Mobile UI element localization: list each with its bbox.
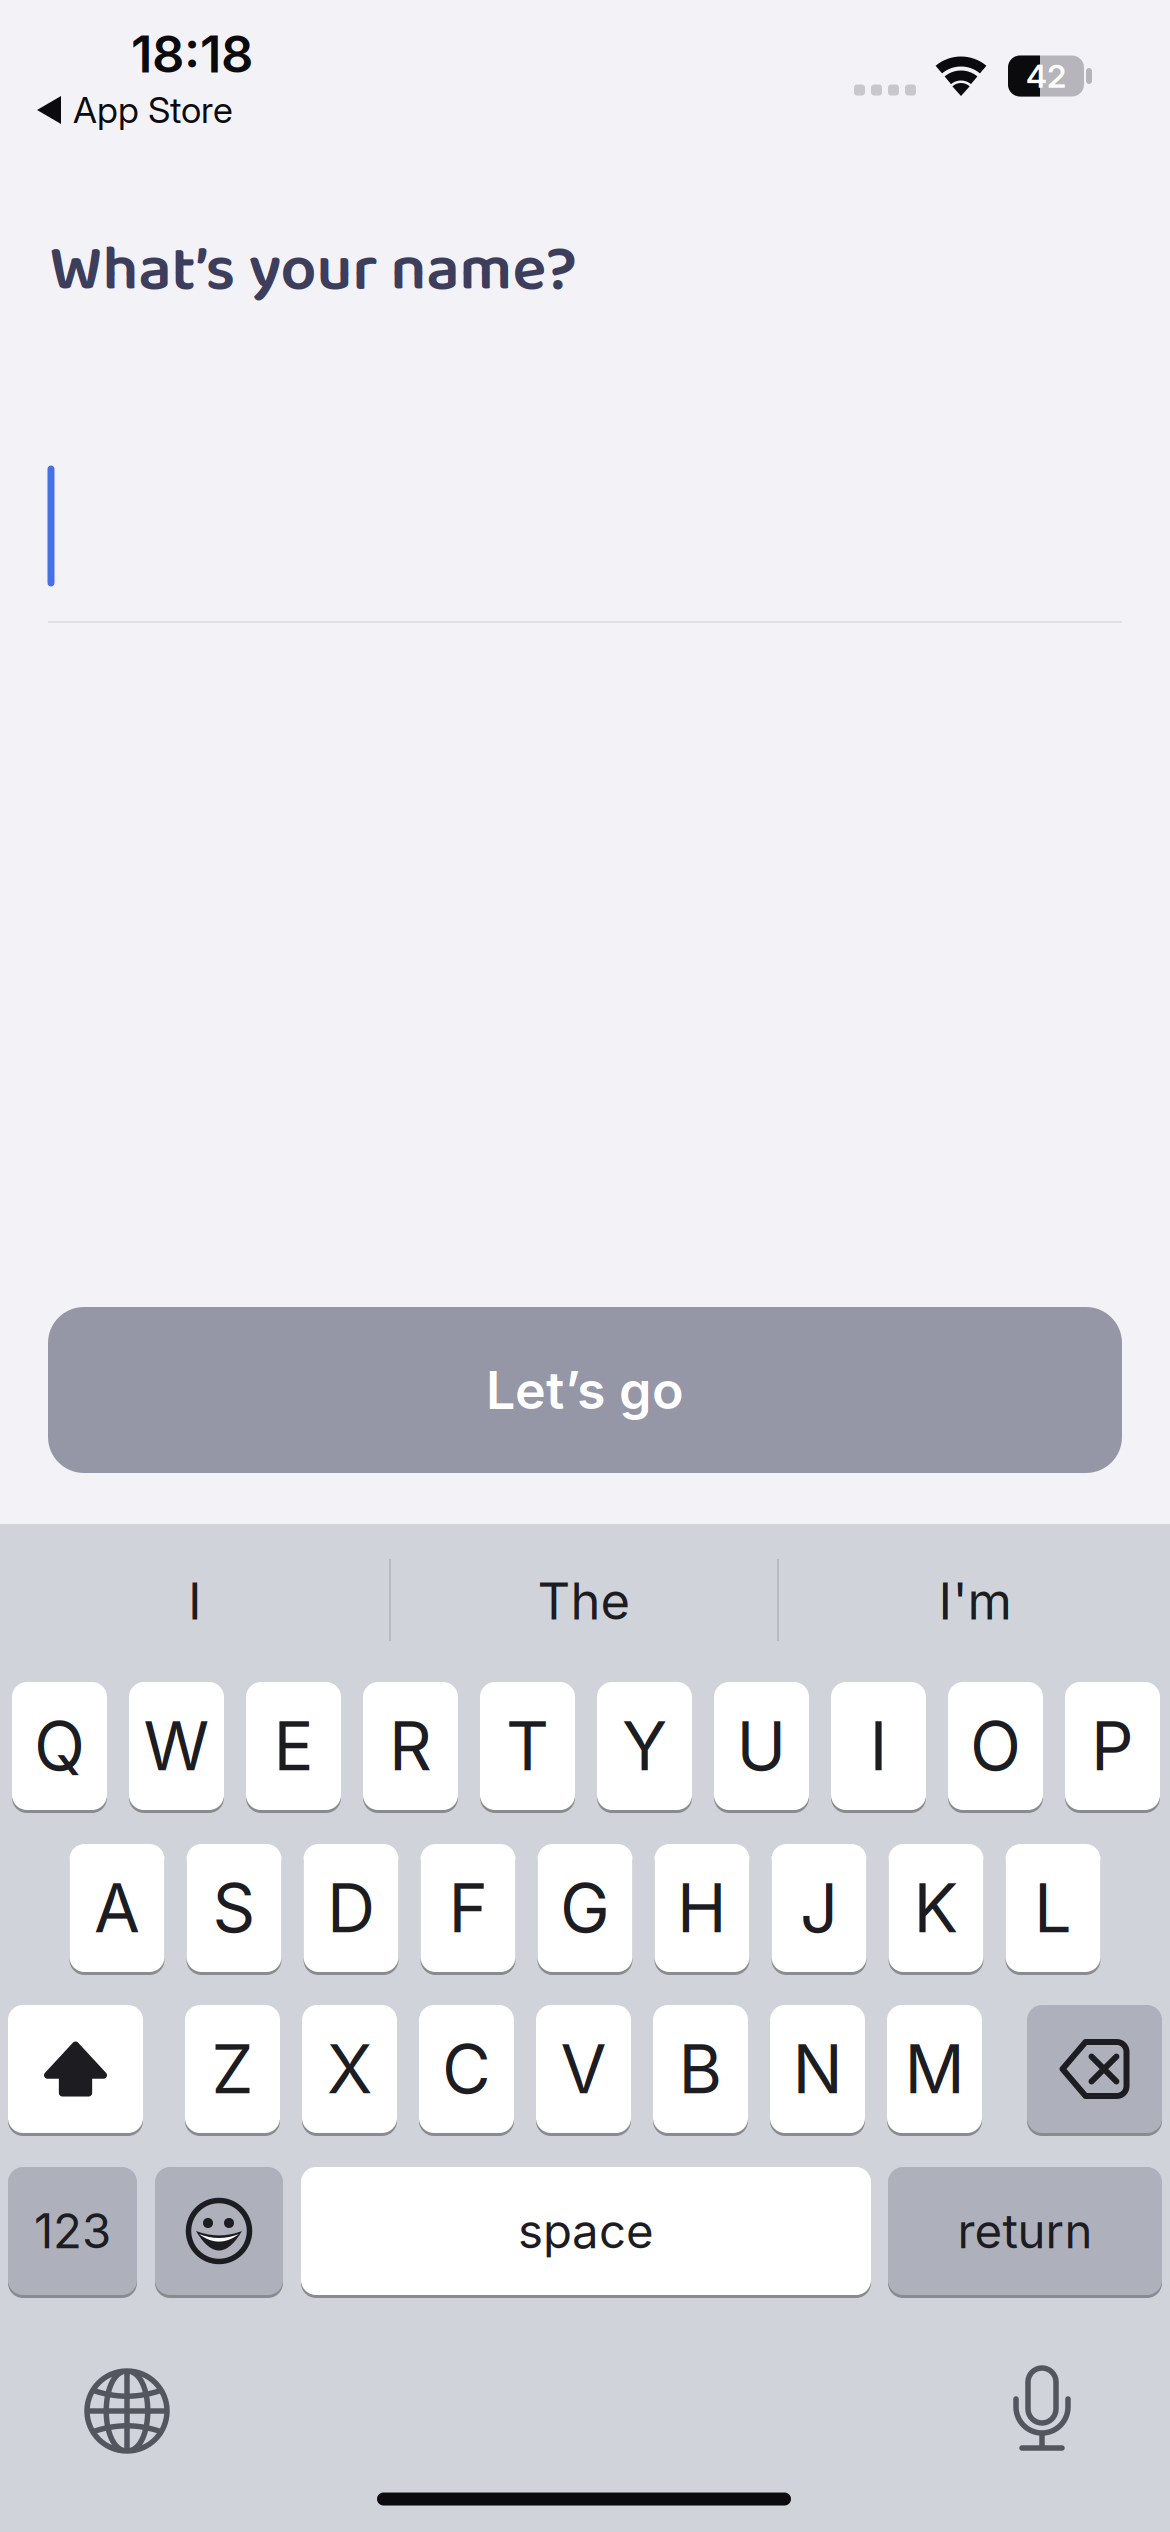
staticText: N: [792, 2029, 842, 2109]
button[interactable]: Q: [12, 1682, 107, 1810]
button[interactable]: H: [654, 1844, 749, 1972]
button[interactable]: The: [394, 1551, 774, 1651]
staticText: J: [800, 1868, 838, 1948]
staticText: space: [518, 2202, 654, 2260]
button[interactable]: S: [186, 1844, 281, 1972]
staticText: S: [212, 1868, 255, 1948]
button[interactable]: K: [888, 1844, 983, 1972]
staticText: C: [442, 2029, 491, 2109]
button[interactable]: Next keyboard: [87, 2371, 167, 2451]
staticText: Q: [34, 1706, 85, 1786]
button[interactable]: F: [420, 1844, 515, 1972]
staticText: R: [389, 1706, 432, 1786]
button[interactable]: A: [69, 1844, 164, 1972]
button[interactable]: E: [246, 1682, 341, 1810]
staticText: E: [273, 1706, 313, 1786]
staticText: The: [537, 1570, 630, 1632]
staticText: G: [560, 1868, 610, 1948]
staticText: Y: [622, 1706, 667, 1786]
button[interactable]: Delete: [1027, 2005, 1162, 2133]
staticText: 18:18: [131, 23, 253, 85]
button[interactable]: space: [301, 2167, 871, 2295]
staticText: Z: [211, 2029, 253, 2109]
staticText: return: [957, 2202, 1092, 2260]
button[interactable]: U: [714, 1682, 809, 1810]
staticText: W: [143, 1706, 209, 1786]
staticText: O: [970, 1706, 1021, 1786]
button[interactable]: Let’s go: [48, 1307, 1122, 1473]
button[interactable]: Dictation: [1011, 2361, 1073, 2453]
button[interactable]: N: [770, 2005, 865, 2133]
button[interactable]: R: [363, 1682, 458, 1810]
button[interactable]: X: [302, 2005, 397, 2133]
button[interactable]: C: [419, 2005, 514, 2133]
staticText: 42: [1026, 57, 1066, 95]
button[interactable]: 123: [8, 2167, 137, 2295]
button[interactable]: Shift: [8, 2005, 143, 2133]
staticText: App Store: [73, 88, 233, 132]
button[interactable]: D: [303, 1844, 398, 1972]
button[interactable]: I: [831, 1682, 926, 1810]
button[interactable]: B: [653, 2005, 748, 2133]
staticText: I: [869, 1706, 887, 1786]
button[interactable]: return: [888, 2167, 1162, 2295]
staticText: P: [1091, 1706, 1134, 1786]
staticText: I'm: [938, 1570, 1011, 1632]
button[interactable]: Y: [597, 1682, 692, 1810]
button[interactable]: L: [1005, 1844, 1100, 1972]
button[interactable]: Back to App Store: [37, 88, 233, 132]
button[interactable]: I'm: [785, 1551, 1165, 1651]
button[interactable]: J: [771, 1844, 866, 1972]
staticText: 123: [34, 2202, 111, 2260]
button[interactable]: I: [5, 1551, 385, 1651]
button[interactable]: Z: [185, 2005, 280, 2133]
staticText: V: [560, 2029, 606, 2109]
staticText: M: [904, 2029, 964, 2109]
staticText: T: [506, 1706, 549, 1786]
staticText: K: [913, 1868, 958, 1948]
staticText: F: [448, 1868, 487, 1948]
staticText: I: [188, 1570, 202, 1632]
button[interactable]: Emoji: [155, 2167, 283, 2295]
button[interactable]: W: [129, 1682, 224, 1810]
staticText: D: [327, 1868, 375, 1948]
staticText: U: [736, 1706, 786, 1786]
staticText: What’s your name?: [49, 220, 576, 322]
button[interactable]: T: [480, 1682, 575, 1810]
staticText: A: [94, 1868, 140, 1948]
staticText: B: [678, 2029, 722, 2109]
button[interactable]: V: [536, 2005, 631, 2133]
button[interactable]: P: [1065, 1682, 1160, 1810]
staticText: Let’s go: [486, 1358, 684, 1421]
staticText: X: [327, 2029, 372, 2109]
staticText: L: [1034, 1868, 1072, 1948]
button[interactable]: O: [948, 1682, 1043, 1810]
staticText: H: [677, 1868, 727, 1948]
button[interactable]: M: [887, 2005, 982, 2133]
button[interactable]: G: [537, 1844, 632, 1972]
